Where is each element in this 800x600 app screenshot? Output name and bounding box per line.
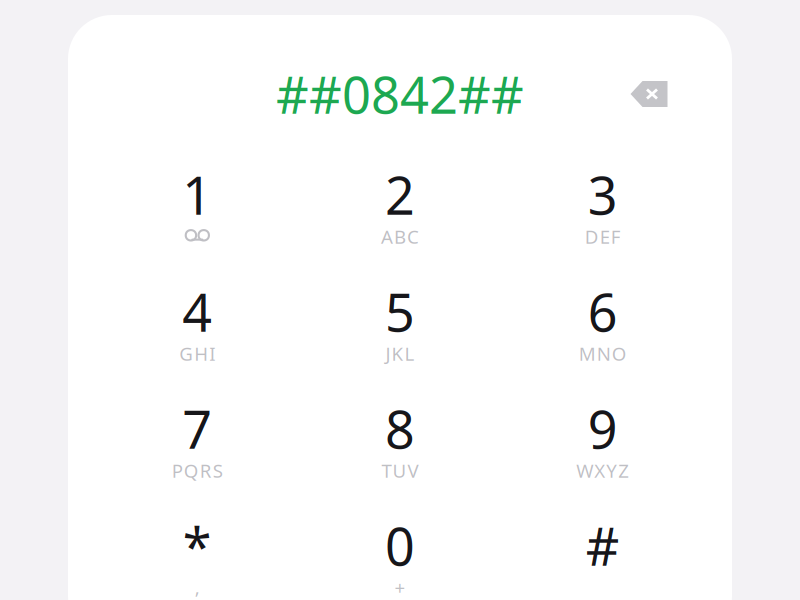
staticText: WXYZ	[576, 458, 629, 483]
staticText: 6	[588, 277, 618, 346]
button[interactable]: * ,	[96, 507, 299, 600]
staticText: DEF	[585, 224, 621, 249]
staticText: +	[394, 575, 405, 600]
staticText: *	[183, 511, 212, 580]
staticText: TUV	[381, 458, 418, 483]
button[interactable]: #	[501, 507, 704, 600]
staticText: 4	[182, 277, 212, 346]
staticText: PQRS	[172, 458, 223, 483]
button[interactable]: 7 PQRS	[96, 390, 299, 489]
staticText: 9	[588, 394, 618, 463]
staticText: GHI	[179, 341, 215, 366]
staticText: 3	[588, 160, 618, 229]
staticText: 0	[385, 511, 415, 580]
staticText: 7	[182, 394, 212, 463]
staticText: ABC	[381, 224, 419, 249]
staticText: 2	[385, 160, 415, 229]
staticText: MNO	[579, 341, 627, 366]
staticText: 1	[182, 160, 212, 229]
button[interactable]: Delete	[602, 69, 732, 119]
button[interactable]: 3 DEF	[501, 156, 704, 255]
button[interactable]: 5 JKL	[299, 273, 501, 372]
staticText: ,	[195, 575, 200, 600]
button[interactable]: 9 WXYZ	[501, 390, 704, 489]
button[interactable]: 4 GHI	[96, 273, 299, 372]
button[interactable]: 1 Voicemail	[96, 156, 299, 255]
staticText: 5	[385, 277, 415, 346]
staticText: JKL	[385, 341, 414, 366]
staticText: #	[586, 511, 620, 580]
staticText: ##0842##	[276, 60, 524, 128]
button[interactable]: 8 TUV	[299, 390, 501, 489]
button[interactable]: 6 MNO	[501, 273, 704, 372]
staticText: 8	[385, 394, 415, 463]
button[interactable]: 2 ABC	[299, 156, 501, 255]
button[interactable]: 0 +	[299, 507, 501, 600]
